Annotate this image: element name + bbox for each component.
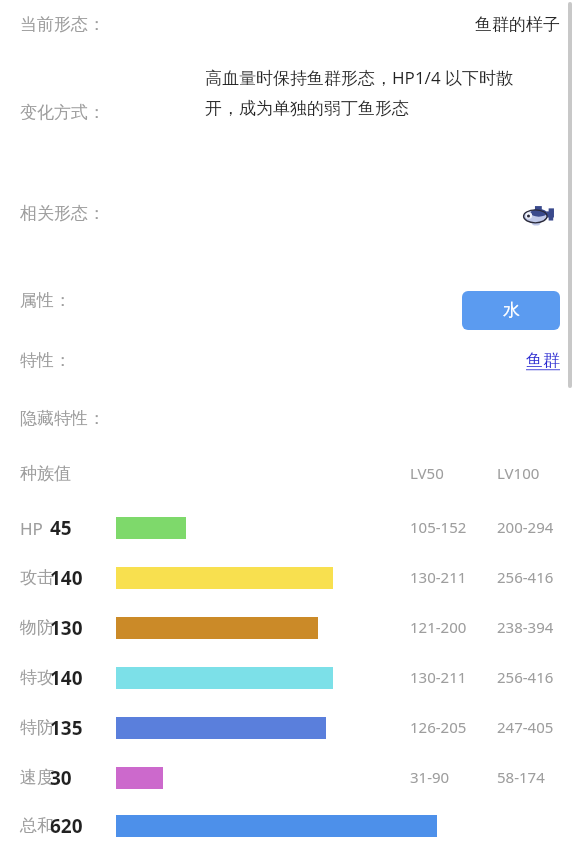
button[interactable]: 变化方式： — [0, 66, 580, 119]
button[interactable]: 物防 — [0, 612, 580, 638]
button[interactable]: HP — [0, 512, 580, 538]
staticText: 620 — [50, 813, 110, 839]
staticText: 140 — [50, 565, 110, 591]
staticText: 58-174 — [497, 767, 571, 787]
staticText: 鱼群的样子 — [475, 14, 560, 35]
button[interactable]: 特攻 — [0, 662, 580, 688]
button[interactable]: 水 — [462, 291, 560, 330]
staticText: 水 — [503, 300, 520, 321]
button[interactable]: 相关形态： — [0, 203, 580, 247]
staticText: 130-211 — [410, 567, 480, 587]
staticText: 特防 — [20, 717, 54, 738]
staticText: 特性： — [20, 350, 71, 371]
staticText: 特攻 — [20, 667, 54, 688]
staticText: 当前形态： — [20, 14, 105, 35]
staticText: HP — [20, 517, 43, 540]
staticText: 135 — [50, 715, 110, 741]
staticText: 130-211 — [410, 667, 480, 687]
staticText: 256-416 — [497, 667, 571, 687]
staticText: 隐藏特性： — [20, 408, 105, 429]
staticText: 256-416 — [497, 567, 571, 587]
staticText: 200-294 — [497, 517, 571, 537]
staticText: 130 — [50, 615, 110, 641]
button[interactable]: 当前形态： — [0, 14, 580, 35]
staticText: LV50 — [410, 463, 480, 483]
staticText: LV100 — [497, 463, 571, 483]
button[interactable]: 属性： — [0, 290, 580, 329]
staticText: 126-205 — [410, 717, 480, 737]
staticText: 相关形态： — [20, 203, 105, 224]
staticText: 种族值 — [20, 463, 71, 484]
staticText: 攻击 — [20, 567, 54, 588]
staticText: 变化方式： — [20, 102, 105, 123]
staticText: 31-90 — [410, 767, 480, 787]
staticText: 105-152 — [410, 517, 480, 537]
button[interactable]: 隐藏特性： — [0, 408, 580, 429]
button[interactable]: 特防 — [0, 712, 580, 738]
button[interactable]: 总和 — [0, 810, 580, 836]
staticText: 140 — [50, 665, 110, 691]
button[interactable]: 速度 — [0, 762, 580, 788]
staticText: 247-405 — [497, 717, 571, 737]
button[interactable]: 特性： — [0, 350, 580, 371]
staticText: 总和 — [20, 815, 54, 836]
staticText: 属性： — [20, 290, 71, 311]
staticText: 238-394 — [497, 617, 571, 637]
button[interactable]: 鱼群 — [526, 350, 560, 371]
staticText: 速度 — [20, 767, 54, 788]
staticText: 45 — [50, 515, 110, 541]
button[interactable]: 攻击 — [0, 562, 580, 588]
staticText: 物防 — [20, 617, 54, 638]
button[interactable]: 弱丁鱼 鱼群的样子 — [516, 197, 560, 241]
staticText: 121-200 — [410, 617, 480, 637]
staticText: 30 — [50, 765, 110, 791]
staticText: 高血量时保持鱼群形态，HP1/4 以下时散开，成为单独的弱丁鱼形态 — [205, 66, 545, 119]
